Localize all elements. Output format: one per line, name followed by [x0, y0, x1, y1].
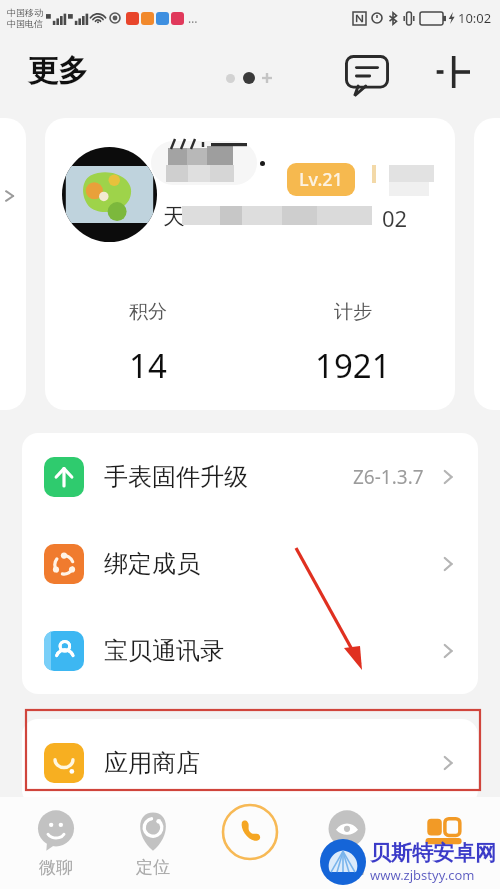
button[interactable]: Store [403, 797, 485, 889]
staticText: 微聊 [39, 857, 73, 878]
button[interactable]: Call [209, 797, 291, 889]
button[interactable]: Lv.21 [45, 118, 455, 410]
button[interactable]: 应用商店 [22, 719, 478, 806]
staticText: Z6-1.3.7 [353, 464, 424, 490]
button[interactable]: 发现 [306, 797, 388, 889]
staticText: 绑定成员 [104, 549, 200, 579]
staticText: 积分 [129, 300, 167, 324]
staticText: 发现 [330, 857, 364, 878]
staticText: 手表固件升级 [104, 462, 248, 492]
button[interactable]: 定位 [112, 797, 194, 889]
staticText: … [188, 10, 198, 26]
staticText: 应用商店 [104, 748, 200, 778]
staticText: 1921 [315, 343, 391, 388]
staticText: 14 [129, 343, 167, 388]
staticText: 10:02 [458, 9, 492, 27]
staticText: 定位 [136, 857, 170, 878]
button[interactable]: 微聊 [15, 797, 97, 889]
button[interactable]: Messages [341, 50, 393, 102]
staticText: 宝贝通讯录 [104, 636, 224, 666]
staticText: 天 [163, 203, 185, 231]
staticText: 更多 [28, 52, 88, 90]
button[interactable]: 手表固件升级 [22, 433, 478, 520]
staticText: 计步 [334, 300, 372, 324]
button[interactable]: 宝贝通讯录 [22, 607, 478, 694]
staticText: 中国移动 [7, 7, 43, 18]
button[interactable]: Add [427, 46, 479, 98]
staticText: www.zjbstyy.com [370, 866, 475, 884]
staticText: 02 [382, 203, 408, 233]
staticText: Lv.21 [299, 167, 343, 192]
staticText: 贝斯特安卓网 [370, 840, 496, 866]
button[interactable]: 绑定成员 [22, 520, 478, 607]
staticText: 中国电信 [7, 18, 43, 29]
